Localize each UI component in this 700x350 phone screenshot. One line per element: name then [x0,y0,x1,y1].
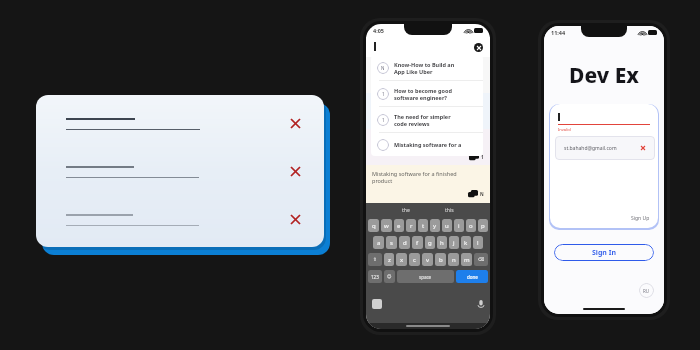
staticText: space [419,274,432,280]
button[interactable]: c [409,253,420,266]
staticText: Mistaking software for a [394,141,462,148]
button[interactable]: a [373,236,384,249]
staticText: x [400,256,404,264]
staticText: n [452,256,456,264]
button[interactable]: st.bahahd@gmail.com [555,136,655,160]
staticText: App Like Uber [394,68,433,75]
staticText: ⇧ [373,257,377,262]
button[interactable]: n [448,253,459,266]
staticText: 1 [481,118,484,124]
button[interactable]: Mistaking software for a [377,133,477,156]
button[interactable]: ⌫ [474,253,488,266]
button[interactable]: m [461,253,472,266]
staticText: 1 [382,91,385,97]
staticText: b [439,256,443,264]
staticText: 4:05 [373,27,384,34]
staticText: 1 [382,117,385,123]
button[interactable]: g [425,236,435,249]
staticText: 11:44 [551,29,566,36]
button[interactable]: d [399,236,410,249]
button[interactable]: Delete row [284,160,306,182]
staticText: j [453,239,455,247]
button[interactable]: N [377,55,477,80]
staticText: ☺ [387,274,392,279]
button[interactable]: 1 [377,107,477,132]
staticText: 1 [481,154,484,160]
staticText: v [426,256,430,264]
staticText: f [416,239,419,247]
button[interactable]: space [397,270,454,283]
button[interactable]: i [454,219,464,232]
button[interactable]: 123 [368,270,382,283]
staticText: q [372,222,376,230]
button[interactable]: f [412,236,423,249]
staticText: Invalid [558,127,571,132]
button[interactable]: u [442,219,452,232]
staticText: l [477,239,479,247]
staticText: RU [643,288,650,294]
staticText: y [433,222,437,230]
staticText: a [377,239,381,247]
button[interactable]: l [473,236,483,249]
button[interactable]: ☺ [384,270,395,283]
staticText: ⌫ [478,257,485,262]
button[interactable]: p [478,219,488,232]
button[interactable]: o [466,219,476,232]
button[interactable]: k [461,236,471,249]
button[interactable]: y [430,219,440,232]
staticText: z [388,256,391,264]
staticText: w [384,222,389,230]
staticText: st.bahahd@gmail.com [564,145,617,152]
staticText: h [440,239,444,247]
staticText: o [469,222,473,230]
staticText: g [428,239,432,247]
button[interactable]: ⇧ [368,253,382,266]
button[interactable]: s [386,236,397,249]
button[interactable]: j [449,236,459,249]
staticText: software engineer? [394,94,447,101]
button[interactable]: Sign Up [631,215,650,222]
button[interactable]: this [445,207,454,214]
button[interactable]: done [456,270,488,283]
button[interactable]: Voice input [478,300,484,309]
button[interactable]: Delete row [36,95,324,247]
button[interactable]: v [422,253,433,266]
button[interactable]: z [384,253,394,266]
button[interactable]: Delete row [284,208,306,230]
button[interactable]: w [381,219,392,232]
button[interactable]: Delete row [284,112,306,134]
button[interactable]: Sign In [554,244,654,261]
staticText: c [413,256,416,264]
button[interactable]: Keyboard switch [372,299,382,309]
staticText: r [410,222,413,230]
staticText: done [467,274,478,280]
button[interactable]: Remove suggestion [639,144,647,152]
staticText: code reviews [394,120,430,127]
staticText: Sign In [592,248,617,258]
staticText: t [422,222,425,230]
staticText: Mistaking software for a finished produc… [372,170,468,184]
staticText: d [403,239,407,247]
staticText: p [481,222,485,230]
staticText: Dev Ex [544,61,664,90]
button[interactable]: the [402,207,410,214]
button[interactable]: r [406,219,416,232]
staticText: Know-How to Build an [394,61,455,68]
staticText: s [390,239,393,247]
staticText: k [464,239,468,247]
staticText: e [397,222,401,230]
button[interactable]: q [368,219,379,232]
button[interactable]: Language RU [639,283,654,298]
button[interactable]: b [435,253,446,266]
button[interactable]: h [437,236,447,249]
button[interactable]: t [418,219,428,232]
button[interactable]: e [394,219,404,232]
staticText: i [458,222,460,230]
button[interactable]: 1 [377,81,477,106]
button[interactable]: Clear search [474,43,483,52]
staticText: The need for simpler [394,113,451,120]
staticText: How to become good [394,87,452,94]
staticText: u [445,222,449,230]
button[interactable]: x [396,253,407,266]
